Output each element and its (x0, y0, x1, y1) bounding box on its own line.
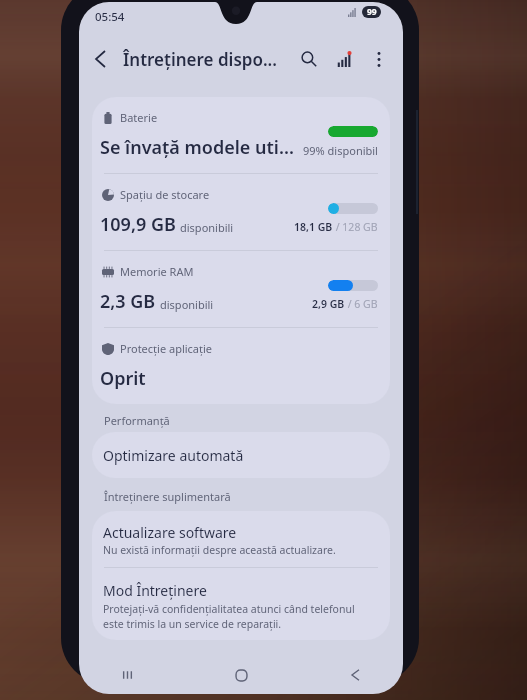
staticText: disponibili (180, 220, 234, 235)
staticText: disponibili (160, 297, 214, 312)
button[interactable]: Actualizare software (92, 511, 390, 567)
button[interactable]: Memorie RAM (92, 251, 390, 327)
staticText: 99% disponibil (303, 143, 378, 158)
staticText: 18,1 GB (294, 220, 333, 234)
button[interactable]: More options (364, 44, 394, 74)
button[interactable]: Optimizare automată (92, 432, 390, 478)
staticText: Actualizare software (103, 523, 237, 542)
staticText: Mod Întreținere (103, 581, 207, 600)
staticText: 2,9 GB (312, 297, 345, 311)
staticText: Performanță (104, 413, 170, 428)
button[interactable]: Mod Întreținere (92, 568, 390, 640)
staticText: Baterie (120, 110, 158, 125)
staticText: / 128 GB (333, 220, 378, 234)
staticText: Protecție aplicație (120, 341, 213, 356)
button[interactable]: Spațiu de stocare (92, 174, 390, 250)
staticText: 109,9 GB (100, 212, 176, 237)
staticText: Oprit (100, 366, 146, 391)
staticText: Optimizare automată (103, 446, 244, 465)
button[interactable]: Back (337, 657, 373, 693)
staticText: Se învață modele uti... (100, 135, 294, 160)
staticText: Protejați-vă confidențialitatea atunci c… (103, 602, 355, 631)
button[interactable]: Baterie (92, 97, 390, 173)
button[interactable]: Recents (109, 657, 145, 693)
staticText: Nu există informații despre această actu… (103, 543, 336, 557)
button[interactable]: Statistics (329, 44, 359, 74)
staticText: Spațiu de stocare (120, 187, 210, 202)
staticText: Memorie RAM (120, 264, 194, 279)
staticText: 05:54 (95, 9, 125, 25)
button[interactable]: Home (223, 657, 259, 693)
staticText: 2,3 GB (100, 289, 156, 314)
staticText: / 6 GB (345, 297, 378, 311)
staticText: Întreținere dispo... (123, 48, 277, 71)
button[interactable]: Back (85, 44, 115, 74)
button[interactable]: Protecție aplicație (92, 328, 390, 404)
staticText: Întreținere suplimentară (104, 489, 231, 504)
button[interactable]: Search (294, 44, 324, 74)
staticText: 99 (367, 6, 377, 18)
